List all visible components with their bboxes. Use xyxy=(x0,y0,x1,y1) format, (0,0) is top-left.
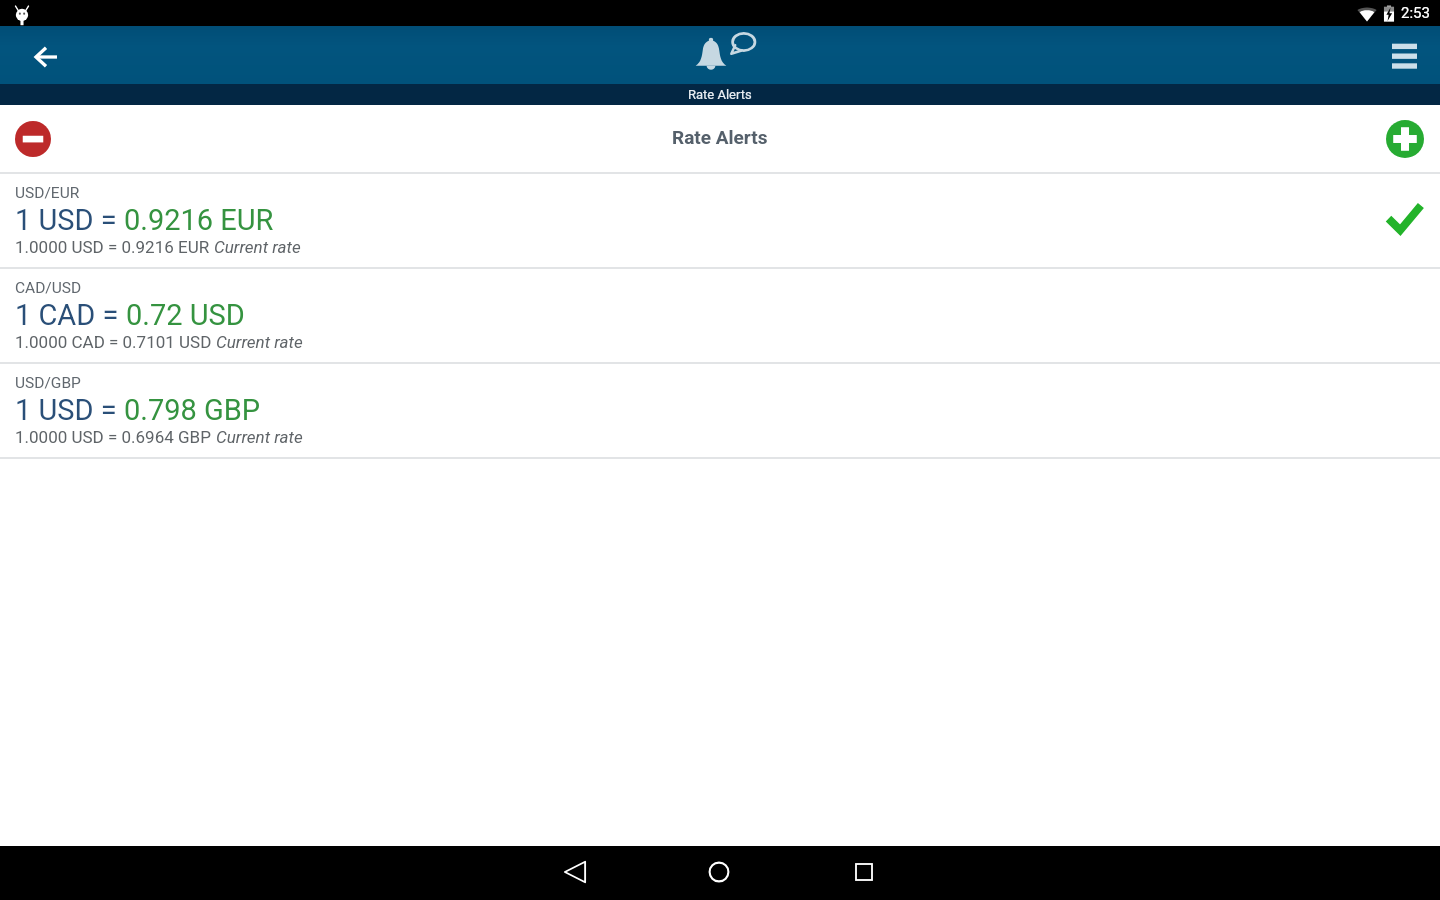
button[interactable]: Add alert xyxy=(1381,115,1428,162)
button[interactable]: Alerts xyxy=(688,32,733,77)
button[interactable]: Menu xyxy=(1382,31,1426,75)
staticText: USD/EUR xyxy=(15,184,80,202)
staticText: 2:53 xyxy=(1401,4,1430,22)
staticText: Rate Alerts xyxy=(688,87,752,102)
button[interactable]: Back xyxy=(24,35,67,78)
button[interactable]: Back xyxy=(551,848,599,896)
staticText: 1.0000 USD = 0.6964 GBP xyxy=(15,427,216,447)
staticText: Current rate xyxy=(216,427,303,447)
staticText: CAD/USD xyxy=(15,279,82,297)
button[interactable]: Home xyxy=(695,848,743,896)
staticText: Current rate xyxy=(214,237,301,257)
staticText: 1 USD = xyxy=(15,393,124,427)
staticText: 0.72 USD xyxy=(126,298,245,332)
staticText: Current rate xyxy=(216,332,303,352)
button[interactable]: Rate Alerts xyxy=(0,84,1440,105)
staticText: 1.0000 CAD = 0.7101 USD xyxy=(15,332,216,352)
button[interactable]: USD/GBP xyxy=(0,364,1440,459)
button[interactable]: Messages xyxy=(724,24,762,62)
button[interactable]: USD/EUR xyxy=(0,174,1440,269)
staticText: 1 CAD = xyxy=(15,298,126,332)
button[interactable]: Remove alert xyxy=(9,115,56,162)
staticText: 0.9216 EUR xyxy=(124,203,274,237)
button[interactable]: Recents xyxy=(840,848,888,896)
staticText: Rate Alerts xyxy=(672,126,768,148)
staticText: 1.0000 USD = 0.9216 EUR xyxy=(15,237,214,257)
staticText: USD/GBP xyxy=(15,374,81,392)
button[interactable]: CAD/USD xyxy=(0,269,1440,364)
staticText: 0.798 GBP xyxy=(124,393,261,427)
staticText: 1 USD = xyxy=(15,203,124,237)
